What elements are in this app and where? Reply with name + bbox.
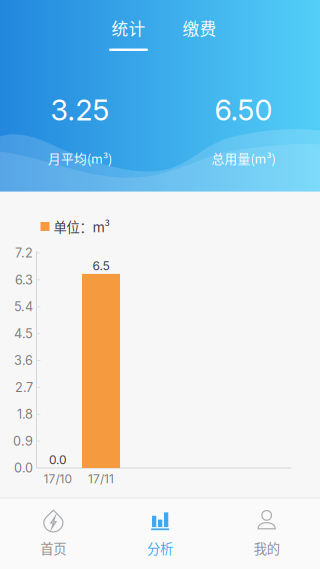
- staticText: 3.25: [50, 93, 109, 127]
- staticText: 月平均(m³): [48, 149, 112, 167]
- button[interactable]: 分析: [107, 498, 213, 569]
- staticText: 单位：m³: [53, 217, 109, 236]
- staticText: 3.6: [14, 353, 33, 368]
- staticText: 17/10: [43, 472, 72, 486]
- staticText: 分析: [147, 538, 173, 558]
- staticText: 0.0: [14, 460, 33, 476]
- staticText: 6.3: [15, 272, 33, 287]
- staticText: 我的: [254, 538, 280, 558]
- staticText: 7.2: [15, 245, 33, 261]
- button[interactable]: 首页: [0, 498, 107, 569]
- staticText: 4.5: [14, 326, 33, 341]
- staticText: 统计: [111, 16, 145, 40]
- button[interactable]: 统计: [97, 15, 159, 53]
- staticText: 总用量(m³): [211, 149, 275, 167]
- staticText: 0.0: [49, 453, 67, 467]
- staticText: 首页: [40, 538, 66, 558]
- button[interactable]: 缴费: [168, 15, 230, 53]
- staticText: 17/11: [88, 472, 114, 486]
- button[interactable]: 我的: [213, 498, 320, 569]
- staticText: 0.9: [13, 433, 33, 449]
- staticText: 6.5: [92, 259, 109, 273]
- staticText: 5.4: [14, 299, 33, 314]
- staticText: 2.7: [15, 380, 33, 395]
- staticText: 1.8: [17, 407, 33, 422]
- staticText: 6.50: [214, 93, 272, 127]
- staticText: 缴费: [182, 16, 216, 40]
